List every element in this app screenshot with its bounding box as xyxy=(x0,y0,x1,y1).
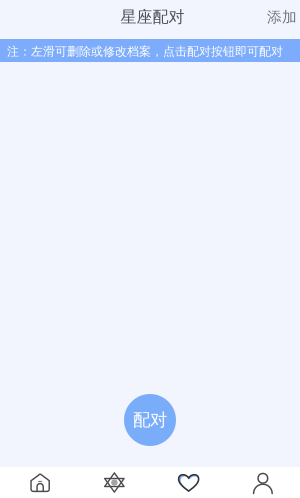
staticText: 星座配对 xyxy=(120,7,184,27)
button[interactable]: 添加 xyxy=(257,2,300,37)
button[interactable]: 星座 xyxy=(77,471,151,493)
button[interactable]: 首页 xyxy=(3,472,77,492)
staticText: 注：左滑可删除或修改档案，点击配对按钮即可配对 xyxy=(7,44,283,59)
staticText: 配对 xyxy=(133,409,167,431)
button[interactable]: 我的 xyxy=(226,472,300,493)
button[interactable]: 配对 xyxy=(151,471,226,493)
button[interactable]: 配对 xyxy=(124,394,176,446)
staticText: 添加 xyxy=(267,8,297,26)
